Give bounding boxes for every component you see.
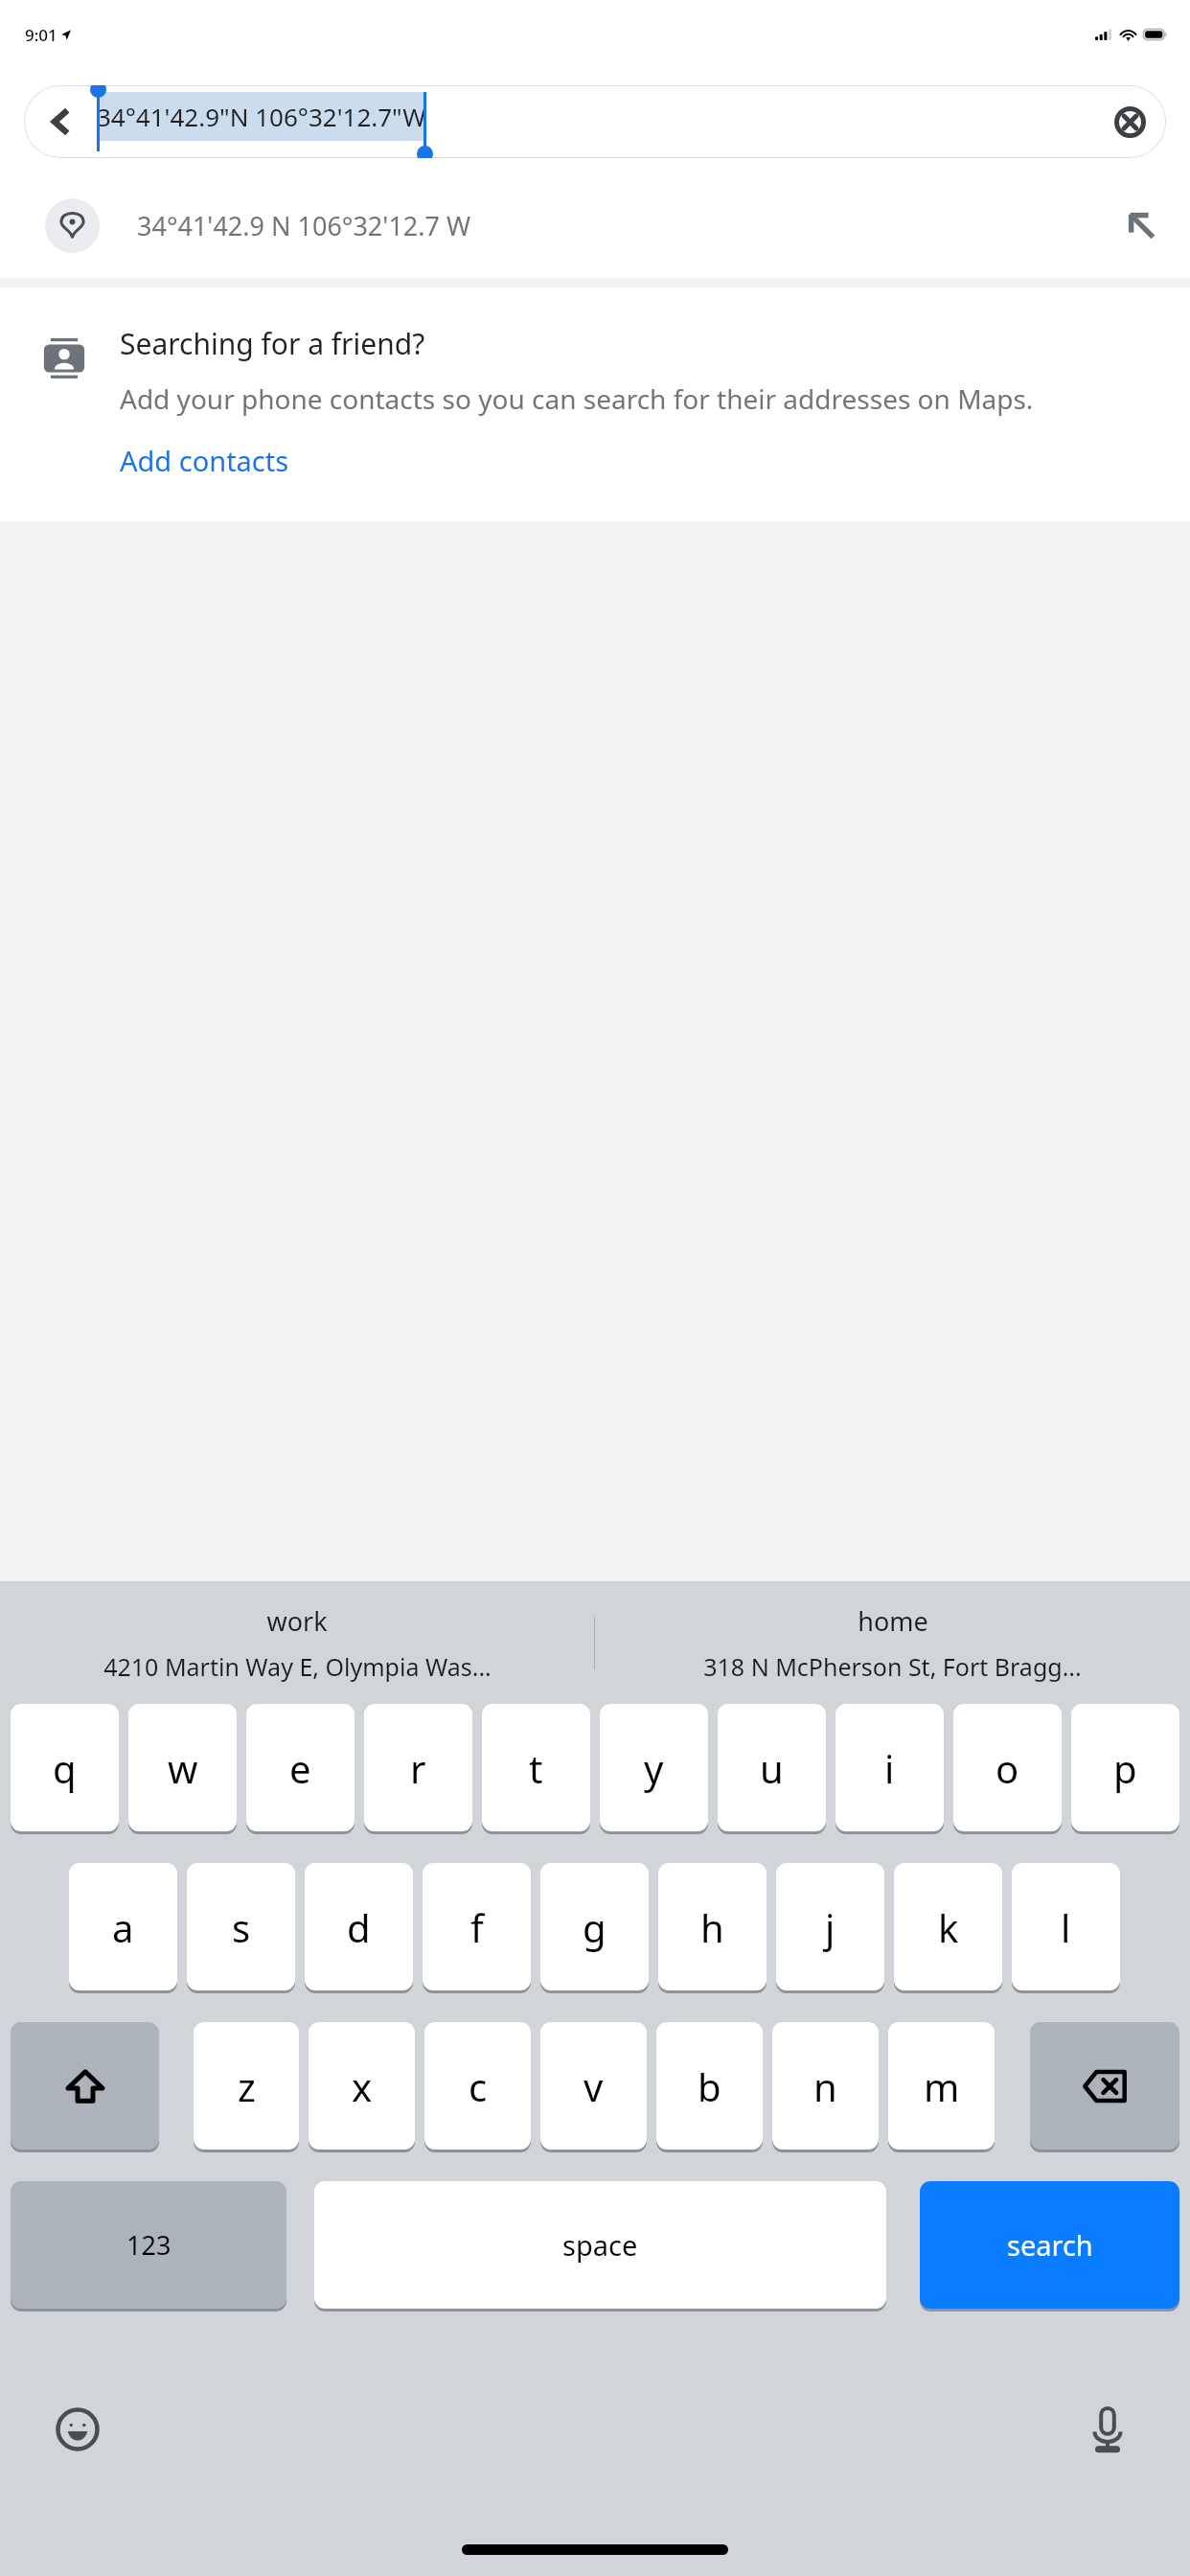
staticText: b bbox=[698, 2060, 721, 2112]
button[interactable]: u bbox=[718, 1704, 826, 1831]
button[interactable]: v bbox=[540, 2022, 647, 2150]
staticText: o bbox=[995, 1742, 1019, 1794]
staticText: a bbox=[112, 1901, 134, 1953]
button[interactable]: h bbox=[658, 1863, 767, 1990]
staticText: f bbox=[470, 1901, 484, 1953]
button[interactable]: Searching for a friend? bbox=[0, 287, 1190, 521]
staticText: Searching for a friend? bbox=[120, 324, 425, 363]
button[interactable]: Shift bbox=[11, 2022, 159, 2150]
button[interactable]: Voice input bbox=[1083, 2404, 1133, 2454]
button[interactable]: 34°41'42.9 N 106°32'12.7 W bbox=[0, 173, 1190, 278]
staticText: 4210 Martin Way E, Olympia Was... bbox=[103, 1650, 492, 1683]
staticText: e bbox=[289, 1742, 311, 1794]
staticText: Add contacts bbox=[120, 442, 289, 479]
button[interactable]: work bbox=[0, 1581, 594, 1704]
staticText: m bbox=[924, 2060, 960, 2112]
button[interactable]: f bbox=[423, 1863, 531, 1990]
button[interactable]: a bbox=[69, 1863, 177, 1990]
button[interactable]: Insert suggestion bbox=[1094, 173, 1190, 278]
staticText: i bbox=[884, 1742, 895, 1794]
button[interactable]: g bbox=[540, 1863, 649, 1990]
button[interactable]: Clear bbox=[1093, 85, 1166, 158]
button[interactable]: search bbox=[920, 2181, 1179, 2309]
staticText: 123 bbox=[126, 2227, 172, 2263]
button[interactable]: m bbox=[888, 2022, 995, 2150]
button[interactable]: r bbox=[364, 1704, 472, 1831]
button[interactable]: l bbox=[1012, 1863, 1120, 1990]
staticText: work bbox=[266, 1603, 328, 1639]
button[interactable]: c bbox=[424, 2022, 531, 2150]
staticText: w bbox=[168, 1742, 198, 1794]
staticText: v bbox=[584, 2060, 604, 2112]
staticText: p bbox=[1113, 1742, 1137, 1794]
staticText: 318 N McPherson St, Fort Bragg... bbox=[703, 1650, 1082, 1683]
staticText: n bbox=[813, 2060, 837, 2112]
staticText: z bbox=[238, 2060, 256, 2112]
button[interactable]: Backspace bbox=[1030, 2022, 1179, 2150]
button[interactable]: 123 bbox=[11, 2181, 286, 2309]
staticText: 9:01 bbox=[25, 24, 57, 46]
button[interactable]: t bbox=[482, 1704, 590, 1831]
staticText: search bbox=[1007, 2226, 1093, 2264]
staticText: q bbox=[53, 1742, 77, 1794]
button[interactable]: Back bbox=[24, 85, 97, 158]
staticText: l bbox=[1061, 1901, 1071, 1953]
button[interactable]: q bbox=[11, 1704, 119, 1831]
button[interactable]: Back bbox=[24, 85, 1166, 158]
button[interactable]: x bbox=[309, 2022, 415, 2150]
button[interactable]: z bbox=[194, 2022, 299, 2150]
button[interactable]: home bbox=[595, 1581, 1190, 1704]
button[interactable]: w bbox=[128, 1704, 237, 1831]
staticText: r bbox=[410, 1742, 426, 1794]
staticText: x bbox=[352, 2060, 373, 2112]
staticText: s bbox=[232, 1901, 251, 1953]
staticText: Add your phone contacts so you can searc… bbox=[120, 380, 1034, 417]
staticText: u bbox=[760, 1742, 784, 1794]
button[interactable]: e bbox=[246, 1704, 355, 1831]
button[interactable]: Emoji bbox=[53, 2404, 103, 2454]
button[interactable]: k bbox=[894, 1863, 1002, 1990]
staticText: y bbox=[644, 1742, 664, 1794]
button[interactable]: d bbox=[305, 1863, 413, 1990]
staticText: j bbox=[825, 1901, 835, 1953]
button[interactable]: b bbox=[656, 2022, 763, 2150]
button[interactable]: Add contacts bbox=[120, 442, 289, 479]
staticText: 34°41'42.9 N 106°32'12.7 W bbox=[137, 208, 1094, 243]
button[interactable]: s bbox=[187, 1863, 295, 1990]
staticText: space bbox=[562, 2226, 638, 2264]
staticText: home bbox=[858, 1603, 928, 1639]
button[interactable]: space bbox=[314, 2181, 886, 2309]
staticText: c bbox=[469, 2060, 488, 2112]
staticText: h bbox=[700, 1901, 724, 1953]
button[interactable]: j bbox=[776, 1863, 884, 1990]
button[interactable]: p bbox=[1071, 1704, 1179, 1831]
staticText: t bbox=[529, 1742, 543, 1794]
button[interactable]: n bbox=[772, 2022, 879, 2150]
staticText: g bbox=[583, 1901, 606, 1953]
button[interactable]: i bbox=[835, 1704, 944, 1831]
button[interactable]: y bbox=[600, 1704, 708, 1831]
staticText: k bbox=[938, 1901, 959, 1953]
staticText: 34°41'42.9"N 106°32'12.7"W bbox=[97, 100, 426, 133]
staticText: d bbox=[347, 1901, 371, 1953]
button[interactable]: o bbox=[953, 1704, 1062, 1831]
